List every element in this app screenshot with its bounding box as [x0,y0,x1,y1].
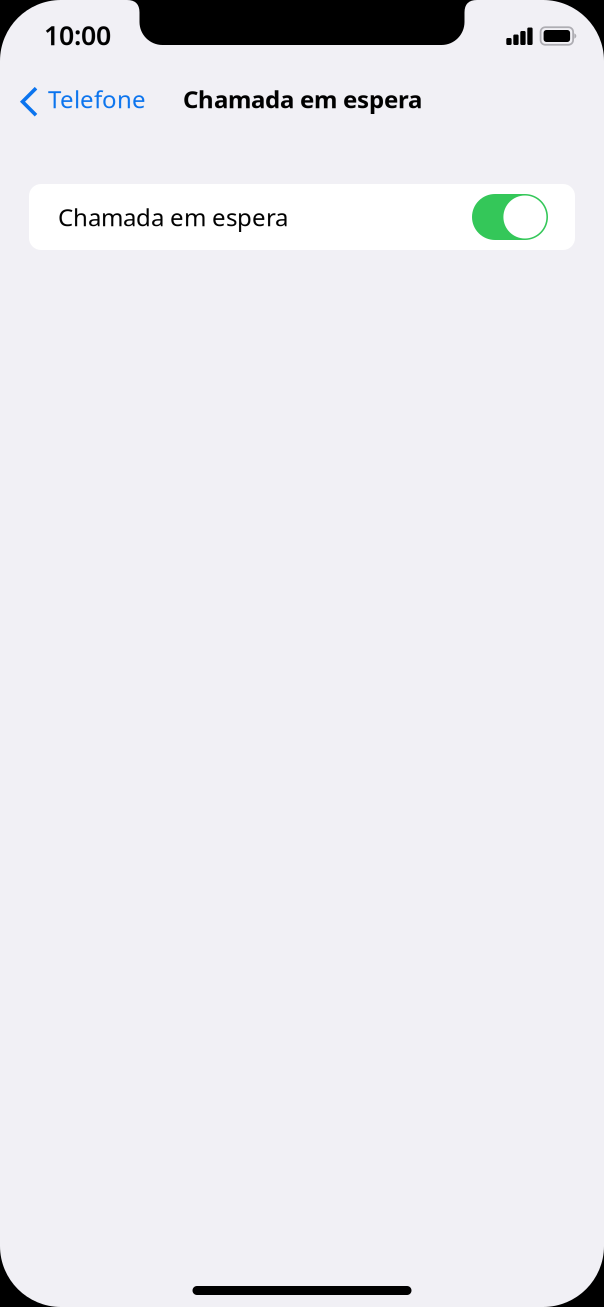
button[interactable]: Chamada em espera [29,184,575,250]
staticText: Telefone [48,83,146,115]
button[interactable]: Chamada em espera, ligado [472,194,548,240]
staticText: Chamada em espera [183,83,422,115]
button[interactable]: Telefone [0,71,146,127]
staticText: 10:00 [44,17,111,53]
staticText: Chamada em espera [58,201,288,233]
